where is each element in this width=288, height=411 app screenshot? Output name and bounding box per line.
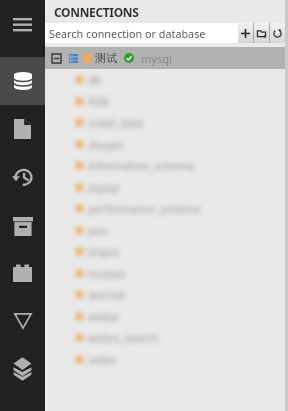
button[interactable]: information_schema [45,155,288,176]
button[interactable]: History [0,159,45,195]
button[interactable]: File [0,111,45,147]
button[interactable]: tmpss [45,241,288,262]
button[interactable]: video [45,349,288,370]
button[interactable]: Filter [0,303,45,339]
staticText: mysql [141,51,172,66]
button[interactable]: douyin [45,134,288,155]
button[interactable]: 测试 [45,47,285,69]
staticText: mysql [88,180,119,195]
button[interactable]: weibo [45,306,288,327]
staticText: weibo_search [88,330,159,345]
button[interactable]: New folder [254,23,269,43]
button[interactable]: Archive [0,208,45,244]
button[interactable]: wechat [45,284,288,305]
button[interactable]: Extensions [0,255,45,291]
button[interactable]: toutiao [45,263,288,284]
button[interactable]: db [45,69,288,90]
staticText: tmpss [88,244,120,259]
button[interactable]: mysql [45,177,288,198]
staticText: toutiao [88,266,126,281]
staticText: 测试 [95,51,117,65]
staticText: CONNECTIONS [54,4,139,20]
button[interactable]: pim [45,220,288,241]
button[interactable]: Layers [0,351,45,387]
staticText: weibo [88,309,120,324]
staticText: information_schema [88,158,195,173]
button[interactable]: FDB [45,91,288,112]
staticText: pim [88,223,108,238]
staticText: video [88,352,117,367]
staticText: FDB [88,94,109,109]
button[interactable]: crawl_data [45,112,288,133]
staticText: performance_schema [88,201,201,216]
button[interactable]: Database [0,57,45,105]
button[interactable]: weibo_search [45,327,288,348]
button[interactable]: Search connection or database [45,23,238,43]
button[interactable]: Refresh [270,23,285,43]
staticText: wechat [88,287,126,302]
staticText: crawl_data [88,115,144,130]
button[interactable]: Add connection [238,23,253,43]
button[interactable]: Menu [0,0,45,48]
staticText: db [88,72,102,87]
button[interactable]: performance_schema [45,198,288,219]
staticText: douyin [88,137,124,152]
staticText: Search connection or database [49,26,206,41]
